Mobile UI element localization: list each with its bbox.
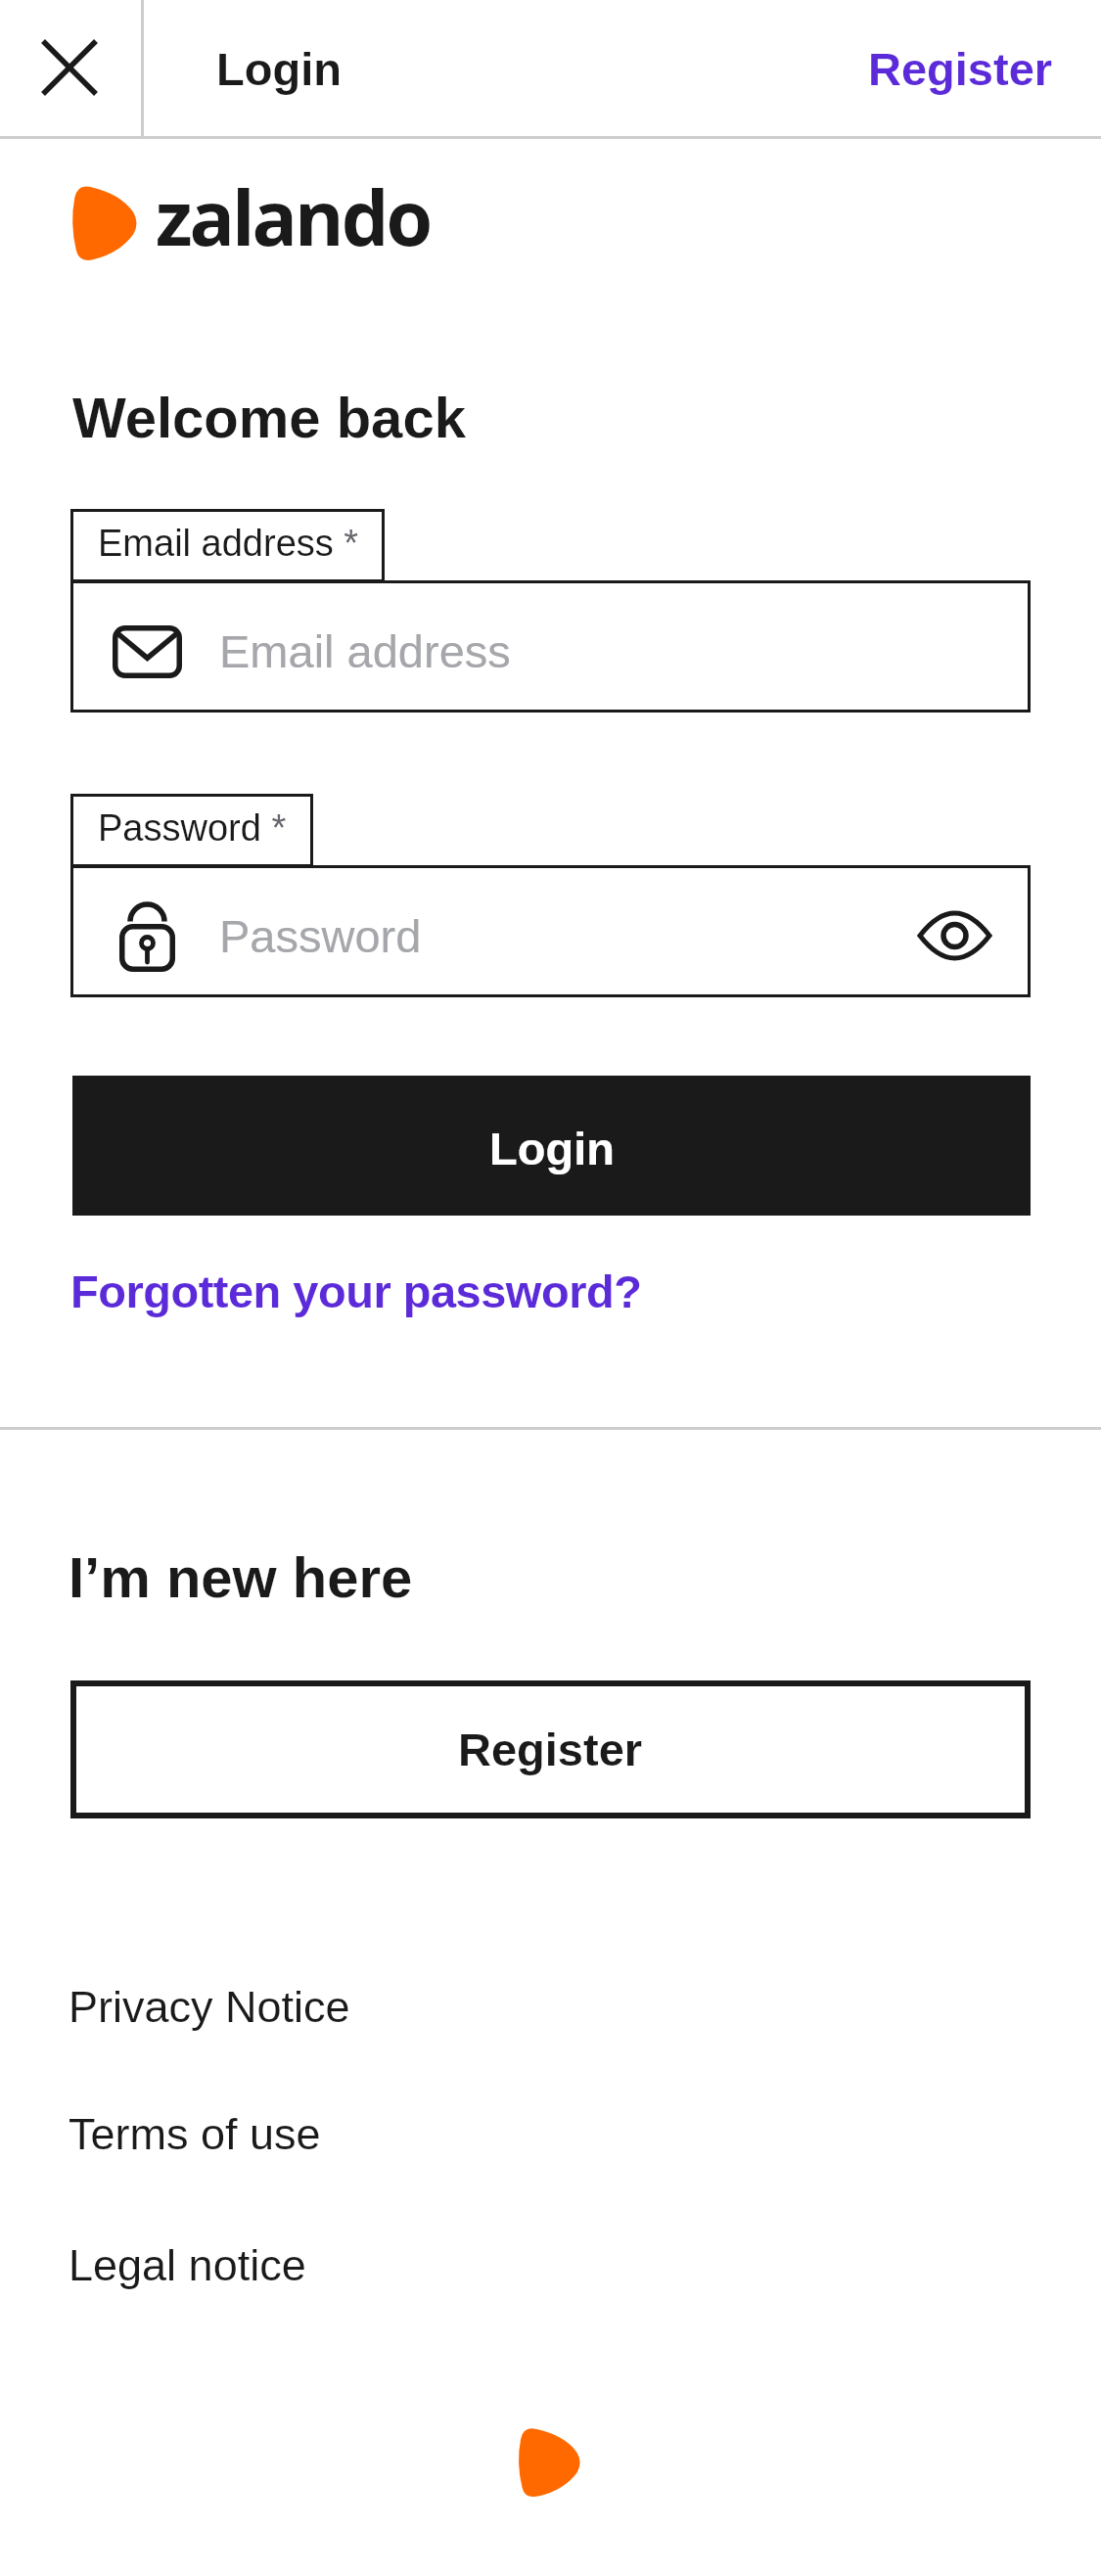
button[interactable]: Login — [72, 1076, 1031, 1216]
staticText: Login — [216, 43, 342, 95]
button[interactable]: Register — [868, 43, 1053, 95]
button[interactable]: Forgotten your password? — [70, 1265, 642, 1317]
button[interactable] — [70, 865, 1031, 997]
button[interactable] — [70, 580, 1031, 713]
staticText: zalando — [156, 165, 431, 268]
staticText: I’m new here — [69, 1545, 413, 1609]
button[interactable]: Privacy Notice — [69, 1982, 350, 2031]
staticText: Password — [219, 910, 422, 962]
staticText: Email address — [219, 625, 511, 677]
staticText: Password * — [98, 807, 287, 849]
staticText: Login — [489, 1123, 615, 1174]
button[interactable]: Legal notice — [69, 2240, 306, 2289]
button[interactable]: Register — [70, 1680, 1031, 1818]
button[interactable] — [905, 897, 1003, 972]
button[interactable]: Terms of use — [69, 2109, 321, 2158]
button[interactable] — [35, 33, 104, 102]
staticText: Email address * — [98, 523, 359, 564]
staticText: Register — [458, 1724, 643, 1775]
staticText: Welcome back — [72, 386, 466, 449]
